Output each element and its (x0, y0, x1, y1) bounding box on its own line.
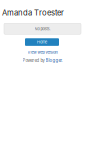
button[interactable]: View web version (0, 50, 85, 55)
staticText: No posts. (34, 26, 50, 31)
staticText: Blogger. (45, 58, 62, 63)
button[interactable]: Home (25, 38, 59, 46)
staticText: Amanda Troester (2, 8, 64, 17)
button[interactable]: Blogger. (45, 58, 62, 63)
staticText: Powered by (22, 58, 45, 63)
staticText: View web version (27, 50, 57, 55)
staticText: Home (37, 40, 47, 44)
